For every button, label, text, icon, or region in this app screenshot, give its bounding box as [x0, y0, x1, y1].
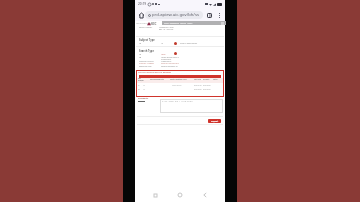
- staticText: Well Number: [138, 78, 144, 82]
- staticText: Related Identifier Value: [170, 79, 187, 81]
- staticText: Consectetur: [161, 58, 172, 60]
- staticText: ID: [139, 42, 142, 45]
- button[interactable]: Submit: [208, 119, 221, 123]
- staticText: 20:19: [138, 2, 147, 6]
- staticText: Comments: [138, 97, 149, 100]
- staticText: Adipiscing e: [161, 60, 172, 62]
- button[interactable]: Home: [136, 10, 146, 20]
- staticText: 4 1 2 3 10 09 1 70 0 1 1 8 09 0 0 8 0: [162, 100, 193, 102]
- staticText: 2024-02-01: [203, 84, 211, 86]
- staticText: Submit: [211, 120, 219, 123]
- button[interactable]: prd-apiew.uic.gov/bh/ss: [145, 11, 203, 19]
- button[interactable]: Home: [175, 190, 185, 200]
- button[interactable]: More options: [214, 10, 224, 20]
- staticText: List Of Construction on Reviews: [138, 71, 172, 74]
- staticText: Search Type: [139, 49, 154, 52]
- staticText: End Date: [203, 79, 210, 81]
- staticText: Sed Do Eiusmod: [161, 62, 179, 65]
- staticText: Lorem ipsum dolor si: [161, 56, 179, 58]
- staticText: 2024-04-01: [203, 88, 211, 90]
- staticText: 02: [138, 88, 140, 90]
- staticText: Record Review Date: [150, 79, 164, 81]
- staticText: Subject Type: [139, 38, 155, 41]
- staticText: 2024-03-01: [194, 88, 202, 90]
- staticText: 2024-01-01: [194, 84, 202, 86]
- button[interactable]: Recents: [150, 190, 160, 200]
- staticText: 13: [143, 88, 145, 90]
- staticText: ID: [139, 53, 142, 56]
- staticText: 12: [161, 42, 164, 45]
- staticText: Lorem ipsum: [172, 84, 182, 86]
- staticText: Click to view details: [180, 42, 198, 45]
- staticText: Home Applications Reports Admin: [164, 22, 193, 24]
- staticText: Status: [213, 79, 218, 81]
- staticText: 1234: [161, 53, 166, 56]
- staticText: Skip to main content: [136, 22, 153, 24]
- button[interactable]: Tabs: [204, 10, 214, 20]
- button[interactable]: Back: [200, 190, 210, 200]
- staticText: 12: [143, 84, 145, 86]
- staticText: prd-apiew.uic.gov/bh/ss: [152, 12, 199, 18]
- staticText: 0: [209, 14, 211, 18]
- staticText: UIC: [151, 22, 157, 26]
- staticText: Rev 1.0 - 2024-02: [159, 28, 174, 30]
- staticText: Operator Contact: [139, 60, 154, 62]
- staticText: Permit Number: [139, 26, 153, 28]
- staticText: 01: [138, 84, 140, 86]
- staticText: Start Date: [194, 79, 202, 81]
- staticText: ID: [139, 56, 142, 59]
- staticText: Reference Code: [139, 65, 152, 67]
- staticText: Tempor incididunt ut: [161, 65, 178, 67]
- staticText: Facility Usage: [139, 62, 154, 65]
- staticText: UIC0000011-0001: [159, 26, 174, 28]
